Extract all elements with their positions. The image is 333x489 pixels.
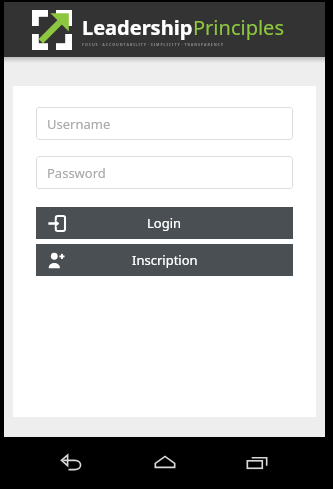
button[interactable]: Back — [50, 441, 94, 485]
staticText: Login — [147, 214, 182, 232]
button[interactable]: Recent apps — [235, 441, 279, 485]
button[interactable]: Login — [36, 207, 293, 239]
button[interactable]: Password — [36, 156, 293, 189]
button[interactable]: Username — [36, 107, 293, 140]
staticText: Username — [47, 115, 111, 133]
staticText: Principles — [193, 14, 284, 41]
staticText: F O C U S · A C C O U N T A B I L I T Y … — [82, 42, 224, 47]
staticText: Inscription — [132, 251, 198, 269]
button[interactable]: Inscription — [36, 244, 293, 276]
button[interactable]: Home — [143, 441, 187, 485]
staticText: Leadership — [82, 14, 193, 41]
staticText: Password — [47, 164, 106, 182]
